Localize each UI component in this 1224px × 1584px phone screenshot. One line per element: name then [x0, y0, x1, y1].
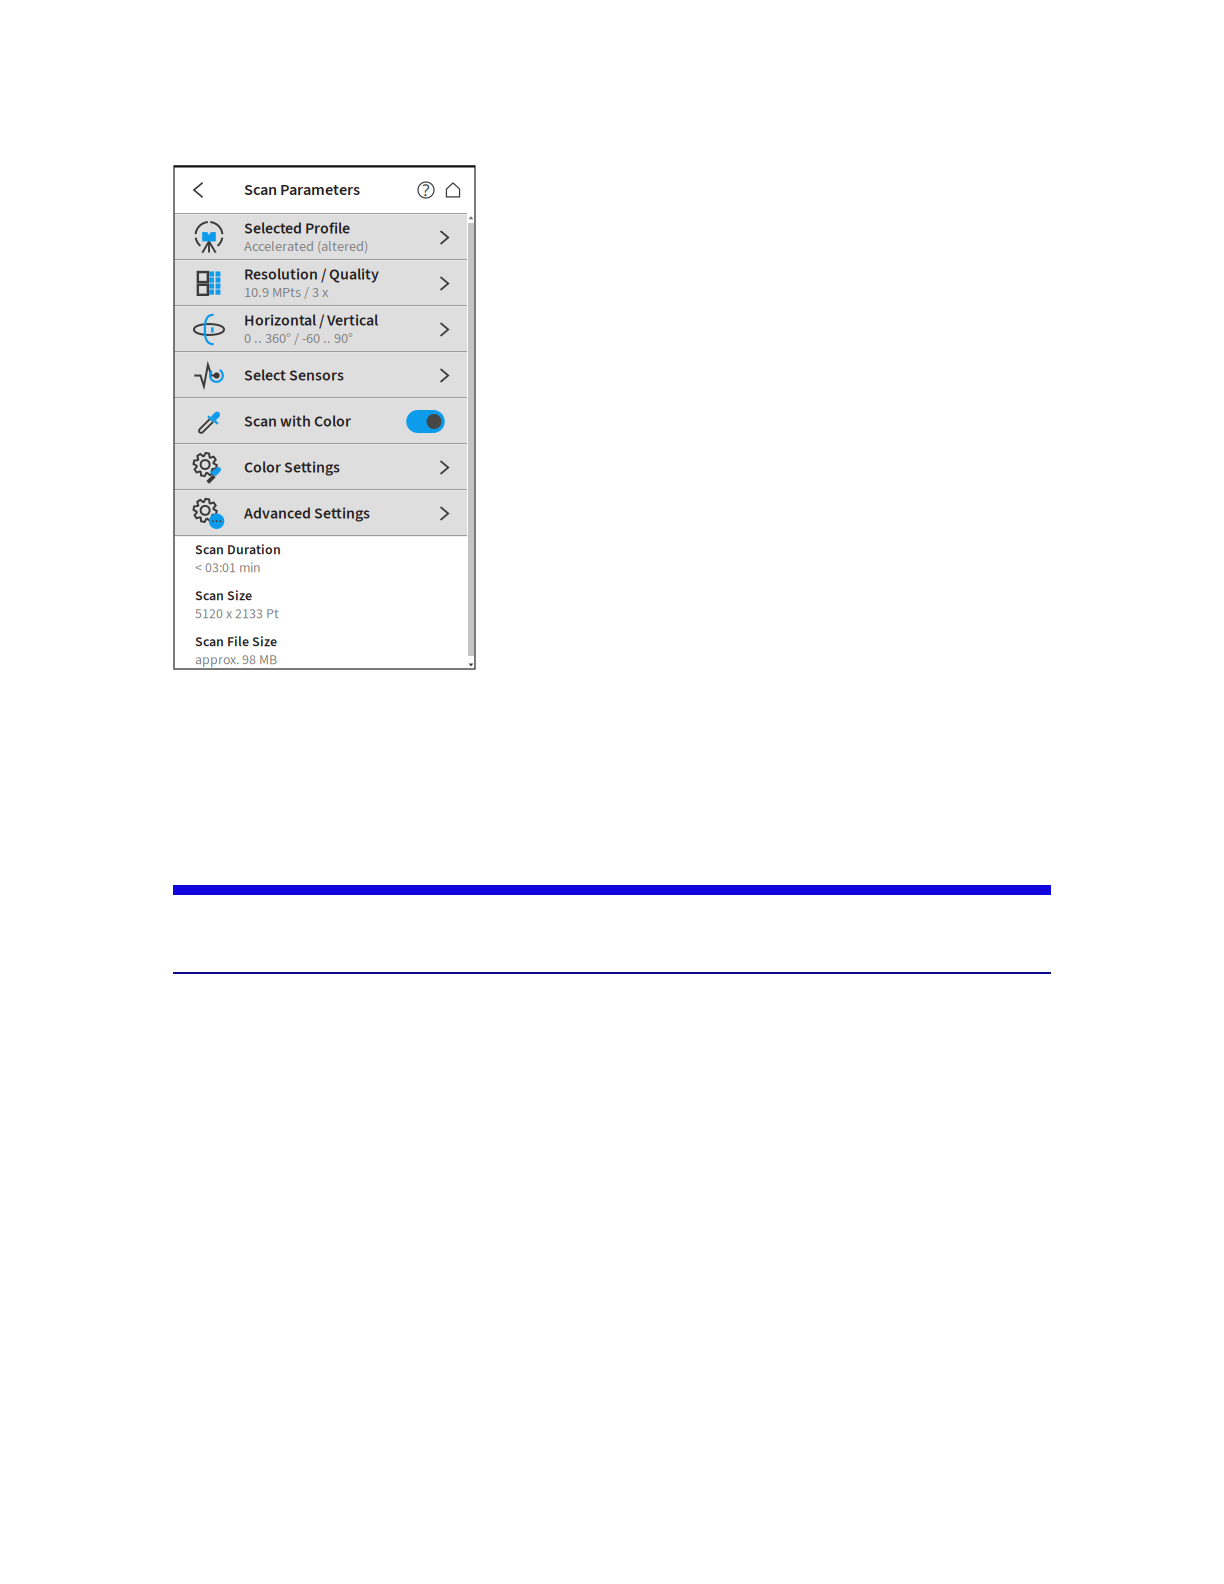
- button[interactable]: Home: [441, 167, 465, 213]
- staticText: Horizontal / Vertical: [244, 309, 378, 332]
- staticText: Scan File Size: [195, 632, 277, 652]
- staticText: Resolution / Quality: [244, 263, 379, 286]
- button[interactable]: Select Sensors: [174, 352, 467, 398]
- staticText: approx. 98 MB: [195, 650, 277, 670]
- button[interactable]: Horizontal / Vertical: [174, 306, 467, 352]
- staticText: Scan Duration: [195, 540, 281, 560]
- button[interactable]: Selected Profile: [174, 214, 467, 260]
- button[interactable]: Color Settings: [174, 444, 467, 490]
- button[interactable]: Help: [414, 167, 438, 213]
- button[interactable]: Scan with Color: [174, 398, 467, 444]
- staticText: Selected Profile: [244, 217, 350, 240]
- staticText: 0 .. 360° / -60 .. 90°: [244, 328, 353, 349]
- staticText: Scan Parameters: [244, 178, 360, 202]
- staticText: Color Settings: [244, 456, 340, 479]
- staticText: Advanced Settings: [244, 502, 370, 525]
- staticText: Scan with Color: [244, 410, 351, 433]
- staticText: Accelerated (altered): [244, 236, 368, 257]
- staticText: 5120 x 2133 Pt: [195, 604, 279, 624]
- staticText: Scan Size: [195, 586, 252, 606]
- staticText: < 03:01 min: [195, 558, 261, 578]
- staticText: 10.9 MPts / 3 x: [244, 282, 328, 303]
- staticText: Select Sensors: [244, 364, 344, 387]
- button[interactable]: Resolution / Quality: [174, 260, 467, 306]
- button[interactable]: Back: [182, 167, 216, 213]
- staticText: ?: [422, 179, 429, 201]
- button[interactable]: Advanced Settings: [174, 490, 467, 536]
